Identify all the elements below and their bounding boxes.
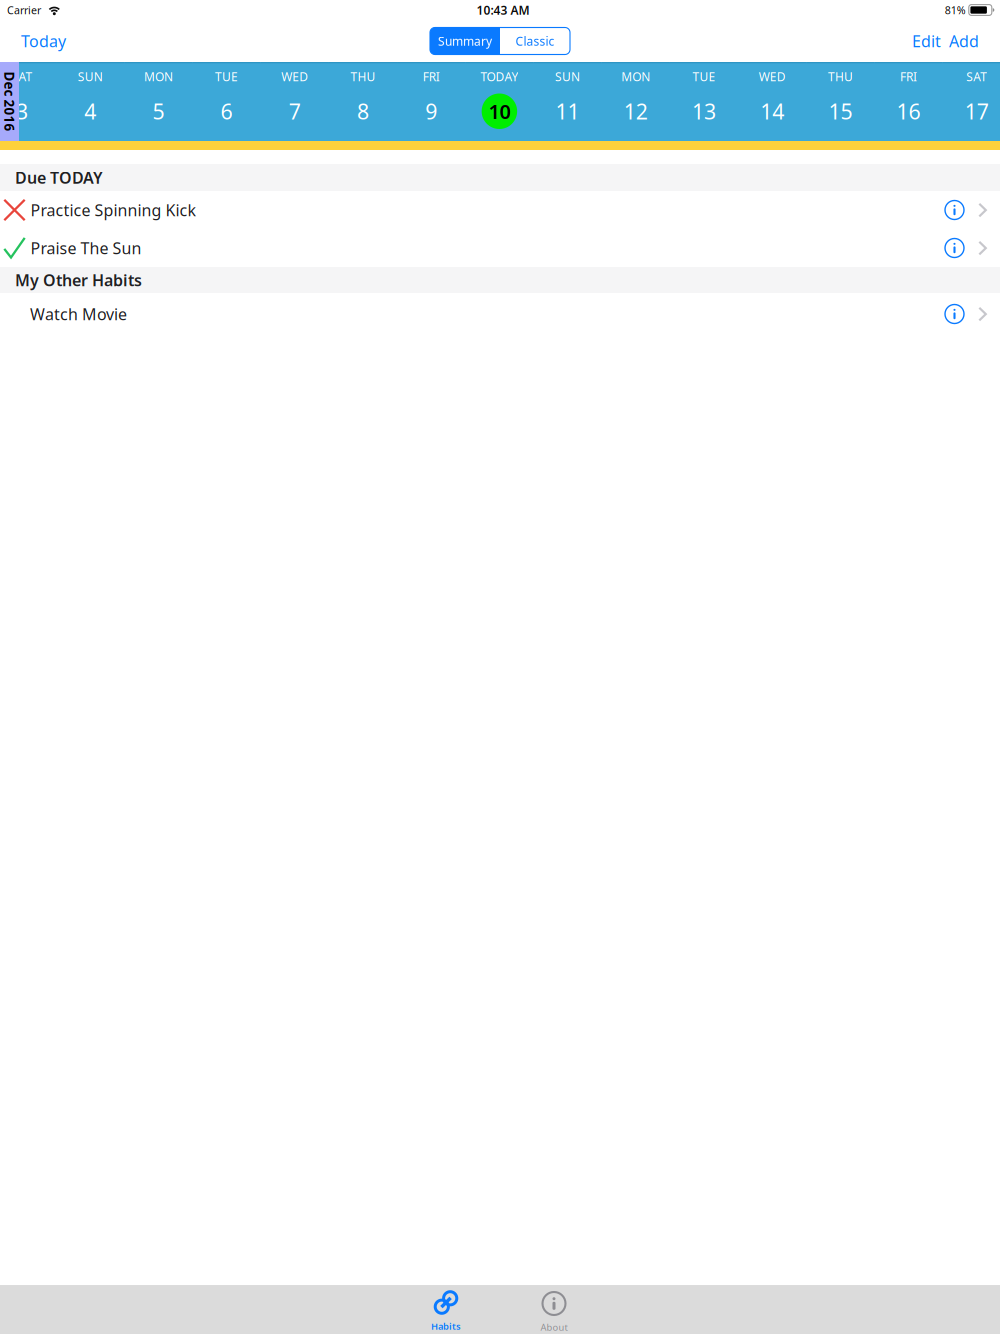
button[interactable]: SAT: [943, 62, 1000, 141]
staticText: Due TODAY: [15, 167, 103, 188]
staticText: 10:43 AM: [476, 2, 529, 18]
staticText: MON: [144, 68, 173, 84]
button[interactable]: TUE: [192, 62, 261, 141]
button[interactable]: SUN: [56, 62, 124, 141]
staticText: Carrier: [7, 3, 41, 17]
staticText: SUN: [555, 68, 580, 84]
staticText: 3: [16, 97, 28, 125]
staticText: Praise The Sun: [30, 237, 141, 259]
button[interactable]: Classic: [500, 27, 570, 54]
staticText: 11: [556, 97, 580, 125]
button[interactable]: TUE: [670, 62, 738, 141]
button[interactable]: Habits: [392, 1285, 500, 1334]
staticText: Habits: [431, 1320, 461, 1332]
button[interactable]: TODAY: [465, 62, 533, 141]
staticText: Watch Movie: [30, 303, 127, 325]
staticText: 81%: [945, 3, 966, 17]
staticText: WED: [281, 68, 308, 84]
staticText: Summary: [438, 33, 492, 49]
staticText: Add: [949, 30, 979, 52]
staticText: TODAY: [480, 68, 518, 84]
staticText: SAT: [11, 68, 32, 84]
button[interactable]: Practice Spinning Kick: [0, 191, 1000, 229]
button[interactable]: SUN: [533, 62, 602, 141]
button[interactable]: About: [500, 1285, 608, 1334]
button[interactable]: FRI: [874, 62, 943, 141]
staticText: Edit: [912, 30, 941, 52]
staticText: FRI: [900, 68, 917, 84]
staticText: 7: [289, 97, 301, 125]
staticText: 10: [488, 98, 510, 125]
staticText: TUE: [692, 68, 715, 84]
staticText: 16: [897, 97, 921, 125]
staticText: TUE: [215, 68, 238, 84]
staticText: 14: [760, 97, 784, 125]
staticText: THU: [828, 68, 853, 84]
staticText: Classic: [515, 33, 554, 49]
staticText: 8: [357, 97, 369, 125]
staticText: Dec 2016: [0, 93, 39, 110]
staticText: 15: [828, 97, 852, 125]
staticText: 12: [624, 97, 648, 125]
staticText: My Other Habits: [15, 269, 142, 291]
staticText: THU: [350, 68, 375, 84]
button[interactable]: WED: [738, 62, 806, 141]
button[interactable]: WED: [261, 62, 329, 141]
staticText: 9: [425, 97, 437, 125]
button[interactable]: THU: [329, 62, 397, 141]
button[interactable]: FRI: [397, 62, 465, 141]
staticText: 4: [84, 97, 96, 125]
staticText: 13: [692, 97, 716, 125]
staticText: 17: [965, 97, 989, 125]
staticText: About: [540, 1321, 567, 1333]
staticText: WED: [759, 68, 786, 84]
button[interactable]: Praise The Sun: [0, 229, 1000, 267]
button[interactable]: THU: [806, 62, 874, 141]
staticText: 5: [152, 97, 164, 125]
button[interactable]: Add: [945, 20, 1000, 62]
staticText: Today: [21, 30, 66, 52]
staticText: 6: [221, 97, 233, 125]
button[interactable]: MON: [602, 62, 670, 141]
button[interactable]: Watch Movie: [0, 295, 1000, 333]
staticText: MON: [621, 68, 650, 84]
staticText: SAT: [966, 68, 987, 84]
button[interactable]: SAT: [0, 62, 56, 141]
button[interactable]: Today: [0, 20, 80, 62]
button[interactable]: Summary: [430, 27, 500, 54]
button[interactable]: MON: [124, 62, 192, 141]
button[interactable]: Edit: [898, 20, 945, 62]
staticText: SUN: [78, 68, 103, 84]
staticText: FRI: [423, 68, 440, 84]
staticText: Practice Spinning Kick: [30, 199, 196, 221]
